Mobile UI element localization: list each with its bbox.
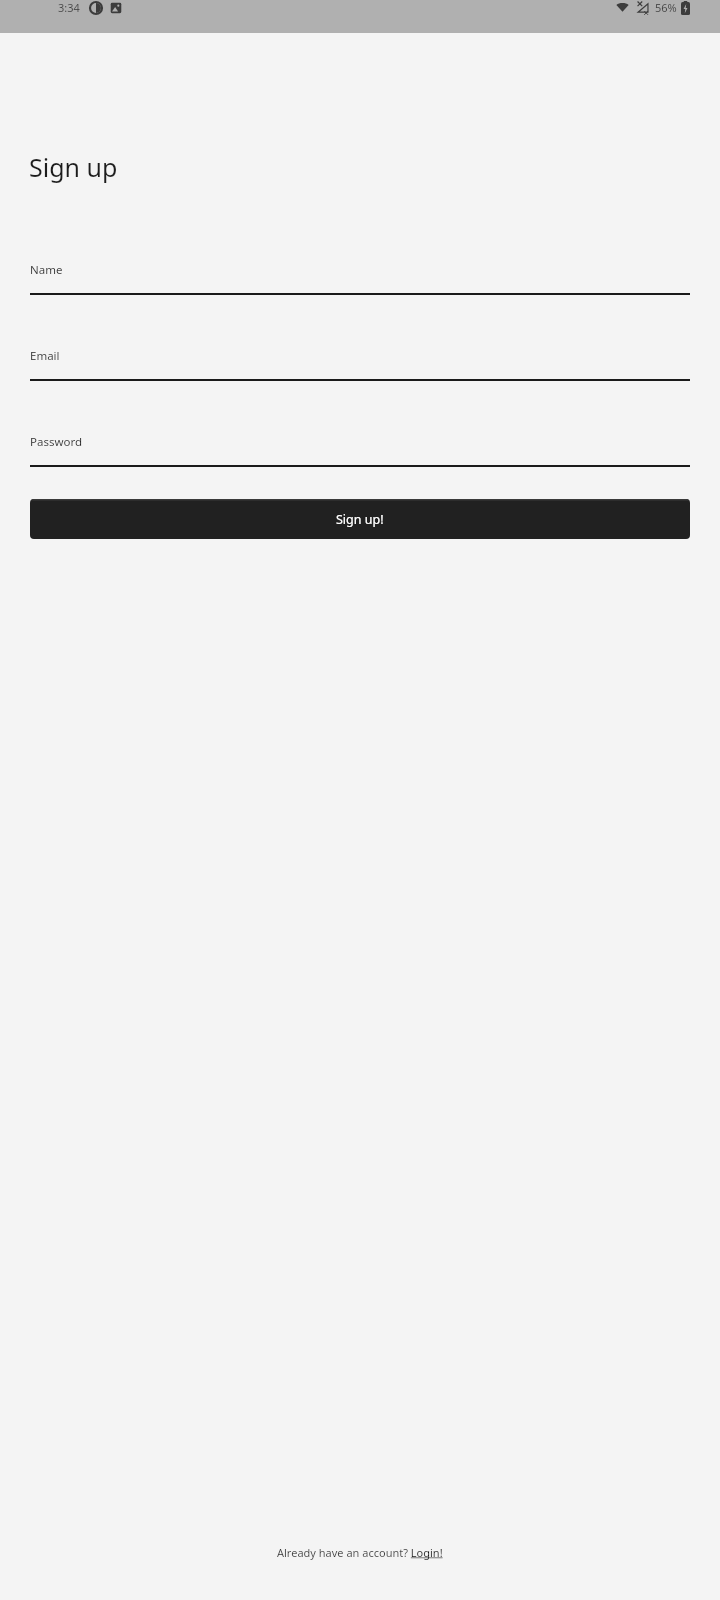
staticText: Password [30,434,83,450]
staticText: 3:34 [58,0,80,15]
staticText: Sign up! [336,511,384,528]
staticText: 56% [655,0,677,15]
staticText: Sign up [29,150,118,184]
button[interactable]: Email [30,348,690,381]
button[interactable]: Password [30,434,690,467]
button[interactable]: Sign up! [30,499,690,539]
button[interactable]: Already have an account? Login! [277,1545,443,1560]
staticText: Name [30,262,63,278]
staticText: Already have an account? Login! [277,1545,443,1560]
button[interactable]: Name [30,262,690,295]
staticText: Email [30,348,60,364]
